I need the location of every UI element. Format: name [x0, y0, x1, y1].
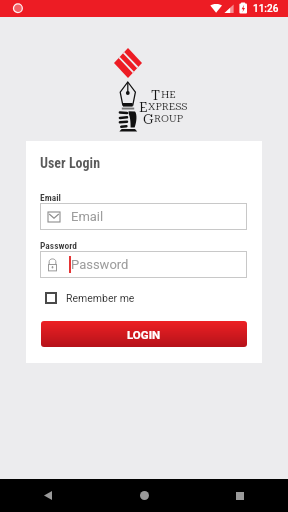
staticText: E — [139, 99, 148, 113]
staticText: Password — [71, 257, 129, 272]
staticText: XPRESS — [148, 101, 188, 113]
button[interactable]: Email — [40, 203, 247, 230]
staticText: User Login — [40, 155, 101, 171]
button[interactable]: Recent apps — [192, 479, 288, 512]
staticText: ROUP — [154, 113, 184, 125]
button[interactable]: Back — [0, 479, 96, 512]
staticText: T — [151, 87, 161, 101]
staticText: G — [143, 111, 154, 125]
staticText: LOGIN — [127, 328, 161, 341]
staticText: Email — [71, 209, 104, 224]
button[interactable]: LOGIN — [41, 321, 247, 347]
staticText: HE — [161, 89, 176, 101]
button[interactable]: Home — [96, 479, 192, 512]
button[interactable]: Remember me — [41, 290, 139, 306]
staticText: Email — [40, 192, 61, 203]
staticText: Password — [40, 240, 77, 251]
staticText: 11:26 — [253, 3, 279, 15]
staticText: Remember me — [66, 292, 135, 304]
button[interactable]: Password — [40, 251, 247, 278]
